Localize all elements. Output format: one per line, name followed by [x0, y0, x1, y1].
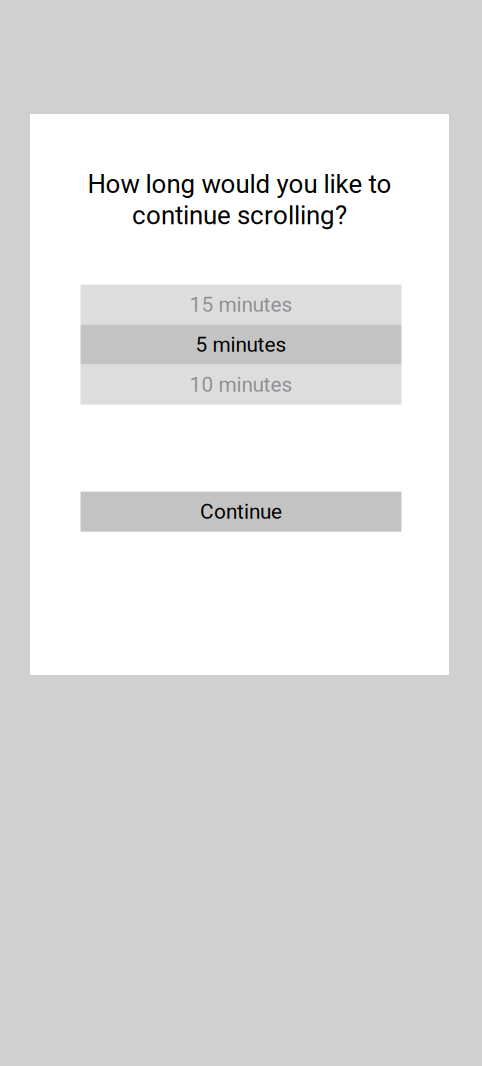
staticText: Continue	[200, 499, 282, 524]
button[interactable]: 5 minutes	[80, 325, 401, 365]
button[interactable]: 10 minutes	[80, 365, 401, 405]
button[interactable]: Continue	[80, 492, 401, 532]
staticText: How long would you like to	[87, 169, 391, 199]
button[interactable]: 15 minutes	[80, 285, 401, 325]
staticText: 5 minutes	[195, 332, 286, 357]
staticText: 10 minutes	[189, 372, 292, 397]
staticText: continue scrolling?	[132, 200, 347, 231]
staticText: 15 minutes	[189, 292, 292, 317]
